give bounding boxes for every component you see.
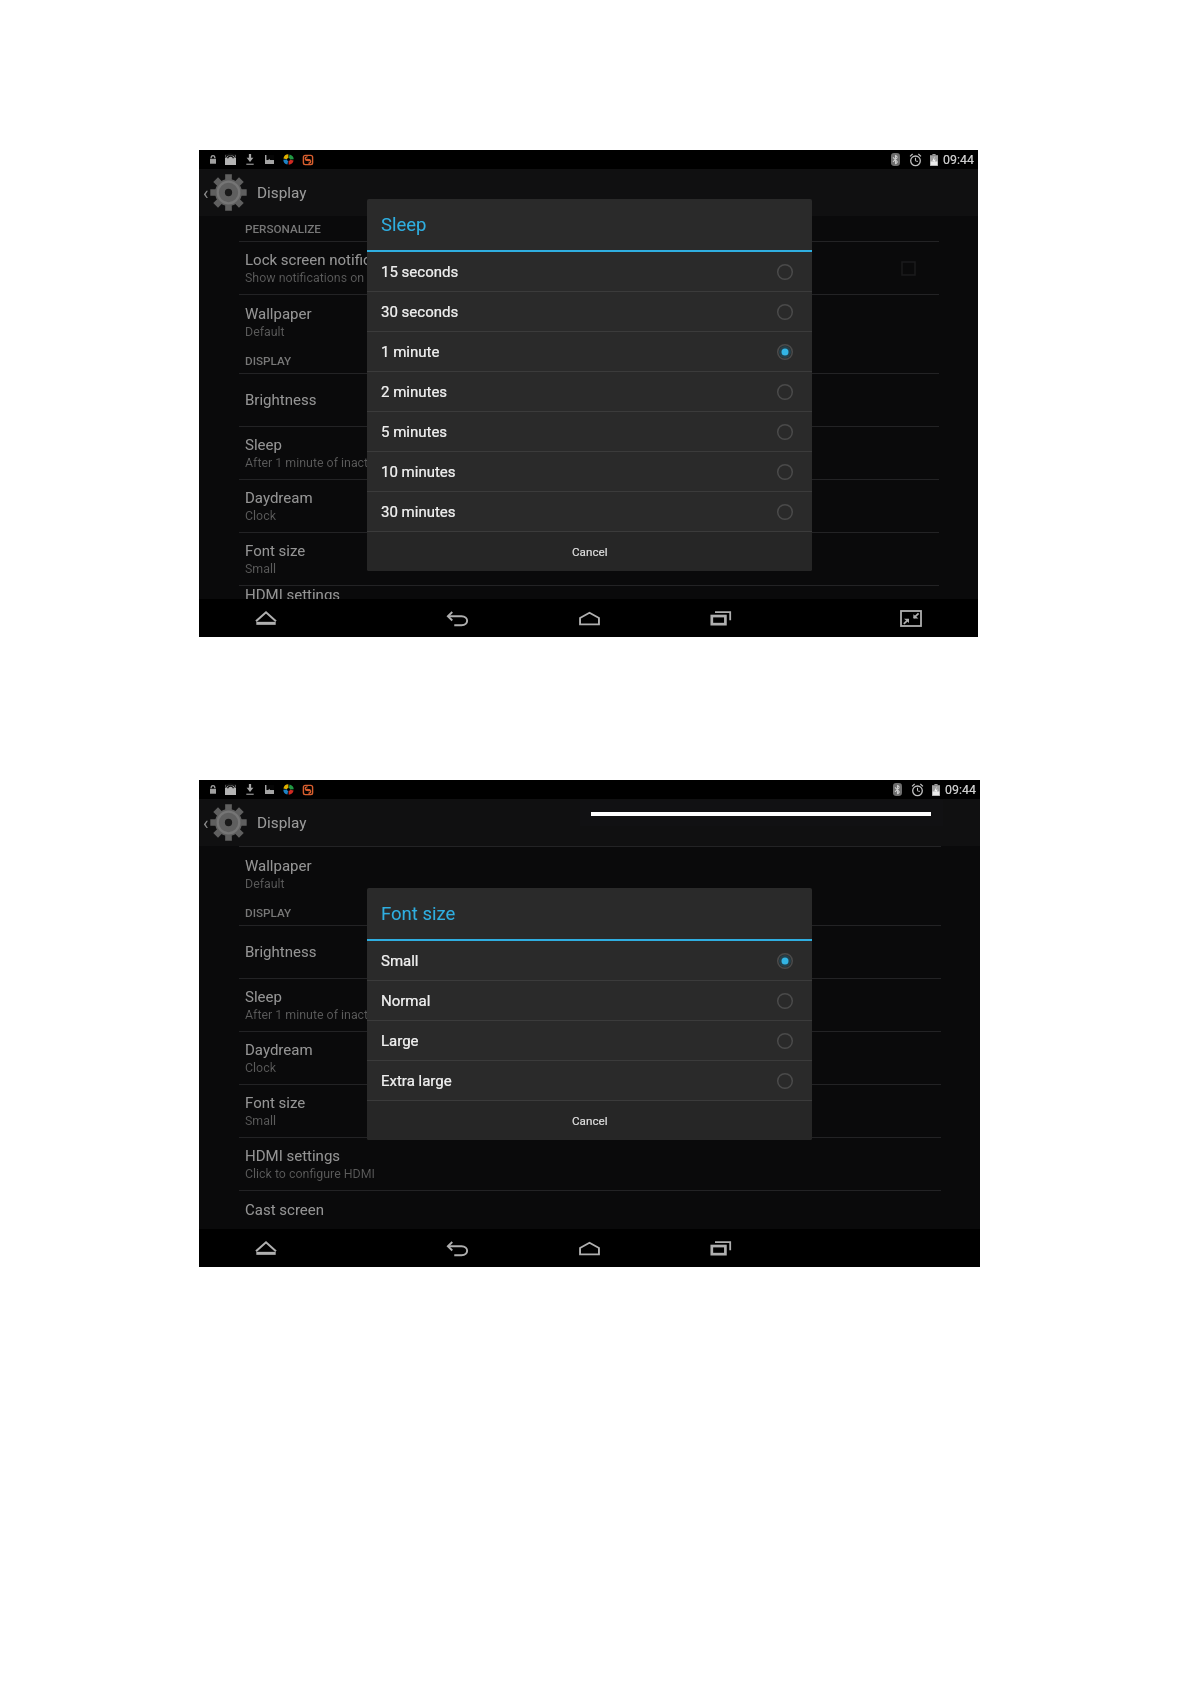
button[interactable]: Recent apps	[701, 1229, 741, 1267]
staticText: Brightness	[245, 391, 317, 409]
staticText: PERSONALIZE	[245, 222, 321, 236]
staticText: 10 minutes	[381, 463, 456, 481]
staticText: Cast screen	[245, 1201, 325, 1219]
staticText: Wallpaper	[245, 857, 312, 875]
staticText: Click to configure HDMI	[245, 1166, 375, 1181]
staticText: 09:44	[943, 152, 974, 167]
button[interactable]: Extra large	[367, 1061, 812, 1101]
staticText: Small	[245, 561, 276, 576]
button[interactable]: ‹	[199, 799, 980, 846]
button[interactable]: Back	[438, 599, 478, 637]
staticText: ‹	[203, 182, 209, 203]
button[interactable]: Eject	[246, 1229, 286, 1267]
staticText: Font size	[245, 542, 306, 560]
staticText: Wallpaper	[245, 305, 312, 323]
button[interactable]: Cast screen	[199, 1191, 980, 1229]
button[interactable]: Daydream	[199, 480, 978, 533]
button[interactable]: HDMI settings	[199, 1138, 980, 1191]
staticText: Lock screen notifications	[245, 251, 413, 269]
button[interactable]: Brightness	[199, 926, 980, 979]
staticText: 2 minutes	[381, 383, 448, 401]
button[interactable]: Eject	[246, 599, 286, 637]
button[interactable]: Daydream	[199, 1032, 980, 1085]
staticText: Cancel	[572, 545, 608, 559]
button[interactable]: Font size	[199, 1085, 980, 1138]
button[interactable]: HDMI settings	[199, 586, 978, 599]
staticText: Extra large	[381, 1072, 452, 1090]
staticText: Show notifications on lock screen	[245, 270, 430, 285]
button[interactable]: Sleep	[199, 979, 980, 1032]
staticText: Default	[245, 876, 285, 891]
staticText: After 1 minute of inactivity	[245, 1007, 391, 1022]
button[interactable]: Large	[367, 1021, 812, 1061]
staticText: 15 seconds	[381, 263, 459, 281]
button[interactable]: Wallpaper	[199, 847, 980, 900]
staticText: 09:44	[945, 782, 976, 797]
staticText: Default	[245, 324, 285, 339]
staticText: Font size	[381, 903, 456, 925]
staticText: ‹	[203, 812, 209, 833]
staticText: 5 minutes	[381, 423, 448, 441]
button[interactable]: Brightness	[199, 374, 978, 427]
button[interactable]: 15 seconds	[367, 252, 812, 292]
button[interactable]: Home	[569, 1229, 609, 1267]
staticText: Display	[257, 184, 307, 202]
button[interactable]: Small	[367, 941, 812, 981]
button[interactable]: ‹	[199, 169, 978, 216]
button[interactable]: Normal	[367, 981, 812, 1021]
staticText: Clock	[245, 508, 276, 523]
staticText: Small	[381, 952, 419, 970]
staticText: After 1 minute of inactivity	[245, 455, 391, 470]
staticText: Cancel	[572, 1114, 608, 1128]
button[interactable]: 10 minutes	[367, 452, 812, 492]
staticText: Daydream	[245, 1041, 313, 1059]
staticText: Sleep	[245, 436, 282, 454]
staticText: Display	[257, 814, 307, 832]
button[interactable]: Home	[569, 599, 609, 637]
button[interactable]: Lock screen notifications	[199, 242, 978, 295]
staticText: Large	[381, 1032, 419, 1050]
button[interactable]: 5 minutes	[367, 412, 812, 452]
button[interactable]: Sleep	[199, 427, 978, 480]
staticText: HDMI settings	[245, 1147, 341, 1165]
button[interactable]: 1 minute	[367, 332, 812, 372]
staticText: Small	[245, 1113, 276, 1128]
button[interactable]: 30 minutes	[367, 492, 812, 532]
staticText: Font size	[245, 1094, 306, 1112]
staticText: Clock	[245, 1060, 276, 1075]
staticText: Sleep	[381, 214, 427, 236]
button[interactable]: Font size	[199, 533, 978, 586]
button[interactable]: 30 seconds	[367, 292, 812, 332]
button[interactable]: Cancel	[367, 1101, 812, 1140]
staticText: 1 minute	[381, 343, 440, 361]
button[interactable]: Cancel	[367, 532, 812, 571]
staticText: DISPLAY	[245, 354, 292, 368]
staticText: 30 seconds	[381, 303, 459, 321]
staticText: Sleep	[245, 988, 282, 1006]
staticText: Daydream	[245, 489, 313, 507]
button[interactable]: 2 minutes	[367, 372, 812, 412]
button[interactable]: Back	[438, 1229, 478, 1267]
button[interactable]: Recent apps	[701, 599, 741, 637]
staticText: Brightness	[245, 943, 317, 961]
button[interactable]: Shrink screen	[891, 599, 931, 637]
staticText: DISPLAY	[245, 906, 292, 920]
button[interactable]: Toggle lock screen notifications	[893, 253, 923, 283]
staticText: HDMI settings	[245, 586, 341, 599]
button[interactable]: Wallpaper	[199, 295, 978, 348]
staticText: Normal	[381, 992, 431, 1010]
staticText: 30 minutes	[381, 503, 456, 521]
